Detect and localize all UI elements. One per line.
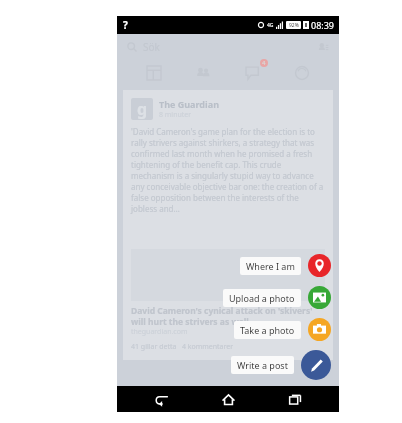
button[interactable]: Messages — [240, 60, 266, 86]
staticText: Upload a photo — [229, 292, 295, 304]
staticText: Write a post — [237, 359, 288, 371]
staticText: Where I am — [246, 260, 295, 272]
staticText: David Cameron's cynical attack on 'skive… — [131, 305, 325, 327]
staticText: theguardian.com — [131, 327, 188, 337]
button[interactable]: Where I am — [240, 254, 331, 277]
staticText: 08:39 — [311, 19, 335, 31]
staticText: ? — [123, 18, 128, 32]
button[interactable]: Recents — [272, 386, 318, 412]
staticText: Take a photo — [240, 324, 295, 336]
staticText: 4 — [262, 59, 266, 67]
staticText: 8 minuter — [159, 110, 192, 120]
staticText: g — [137, 98, 148, 120]
button[interactable]: Back — [138, 386, 184, 412]
button[interactable]: Upload a photo — [223, 286, 331, 309]
staticText: 92% — [289, 22, 299, 29]
staticText: The Guardian — [159, 98, 219, 110]
staticText: 4G — [267, 22, 274, 29]
button[interactable]: Take a photo — [234, 318, 331, 341]
button[interactable]: Write a post — [231, 350, 331, 380]
button[interactable]: Home — [205, 386, 251, 412]
staticText: 41 gillar detta 4 kommentarer — [131, 342, 234, 352]
staticText: Sök — [143, 40, 160, 54]
staticText: 'David Cameron's game plan for the elect… — [131, 126, 325, 214]
